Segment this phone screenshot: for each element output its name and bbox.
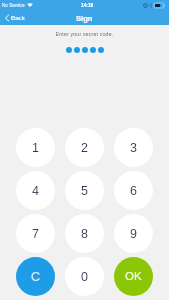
button[interactable]: C — [16, 257, 55, 296]
staticText: C — [31, 270, 41, 284]
button[interactable]: 4 — [16, 171, 55, 210]
staticText: 0 — [81, 270, 88, 284]
button[interactable]: 0 — [65, 257, 104, 296]
button[interactable]: 8 — [65, 214, 104, 253]
button[interactable]: 1 — [16, 128, 55, 167]
button[interactable]: Back — [0, 11, 33, 24]
button[interactable]: 2 — [65, 128, 104, 167]
staticText: 4 — [32, 184, 39, 198]
staticText: Enter your secret code. — [0, 31, 169, 37]
staticText: 6 — [130, 184, 137, 198]
staticText: 5 — [81, 184, 88, 198]
staticText: 7 — [32, 227, 39, 241]
button[interactable]: 5 — [65, 171, 104, 210]
button[interactable]: 9 — [114, 214, 153, 253]
other: Rotation lock — [143, 3, 148, 8]
staticText: 2 — [81, 141, 88, 155]
staticText: 14:19 — [81, 3, 94, 8]
other: Battery — [154, 3, 165, 8]
staticText: 3 — [130, 141, 137, 155]
other: Wi-Fi — [27, 3, 33, 7]
staticText: 9 — [130, 227, 137, 241]
button[interactable]: 6 — [114, 171, 153, 210]
staticText: 8 — [81, 227, 88, 241]
staticText: 1 — [32, 141, 39, 155]
staticText: Back — [11, 14, 25, 21]
staticText: No Service — [2, 3, 25, 8]
button[interactable]: 3 — [114, 128, 153, 167]
button[interactable]: OK — [114, 257, 153, 296]
staticText: Sign — [76, 14, 93, 22]
button[interactable]: 7 — [16, 214, 55, 253]
staticText: OK — [125, 270, 142, 283]
